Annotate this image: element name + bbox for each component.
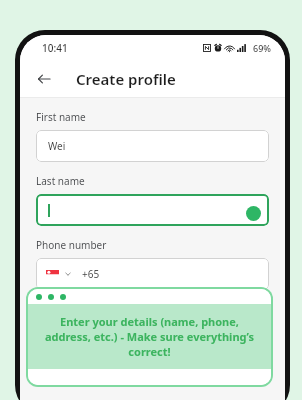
staticText: Last name	[36, 174, 85, 188]
staticText: Enter your details (name, phone, address…	[36, 314, 263, 359]
button[interactable]	[36, 194, 269, 226]
staticText: Wei	[48, 139, 66, 153]
button[interactable]: Back	[30, 65, 58, 93]
button[interactable]: +65	[36, 258, 269, 290]
staticText: 10:41	[42, 41, 68, 55]
staticText: Phone number	[36, 238, 107, 252]
staticText: First name	[36, 110, 86, 124]
staticText: 69%	[253, 42, 271, 54]
button[interactable]: Wei	[36, 130, 269, 162]
staticText: Create profile	[76, 69, 176, 89]
staticText: +65	[82, 267, 100, 281]
button[interactable]: Enter your details (name, phone, address…	[28, 289, 271, 385]
